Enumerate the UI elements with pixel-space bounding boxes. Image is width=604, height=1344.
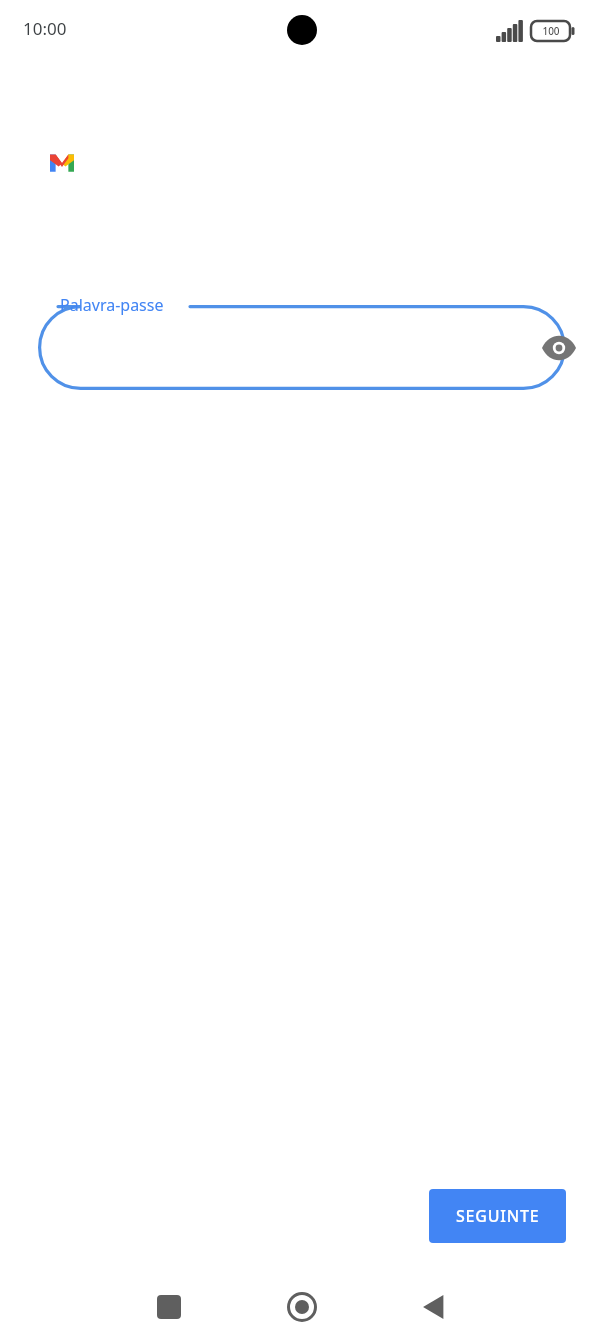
button[interactable]: Gmail (42, 143, 82, 183)
button[interactable]: Mostrar palavra-passe (38, 305, 566, 390)
staticText: 100 (542, 24, 560, 38)
staticText: Palavra-passe (60, 294, 164, 316)
button[interactable]: SEGUINTE (429, 1189, 566, 1243)
button[interactable]: Mostrar palavra-passe (540, 329, 578, 367)
button[interactable]: Voltar (404, 1277, 464, 1337)
button[interactable]: Recentes (139, 1277, 199, 1337)
staticText: 10:00 (23, 17, 67, 40)
staticText: SEGUINTE (456, 1205, 540, 1227)
button[interactable]: Início (272, 1277, 332, 1337)
